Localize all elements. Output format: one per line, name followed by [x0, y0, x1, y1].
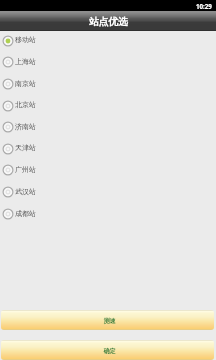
staticText: 南京站 — [15, 79, 36, 88]
staticText: 移动站 — [15, 35, 36, 44]
staticText: 天津站 — [15, 143, 36, 152]
button[interactable]: 上海站 — [0, 51, 216, 73]
staticText: 广州站 — [15, 165, 36, 174]
staticText: 武汉站 — [15, 187, 36, 196]
button[interactable]: 北京站 — [0, 95, 216, 116]
staticText: 10:29 — [196, 2, 212, 10]
button[interactable]: 确定 — [1, 340, 214, 360]
staticText: 测速 — [103, 317, 116, 325]
button[interactable]: 济南站 — [0, 116, 216, 138]
button[interactable]: 成都站 — [0, 203, 216, 225]
staticText: 成都站 — [15, 209, 36, 218]
button[interactable]: 天津站 — [0, 138, 216, 159]
staticText: 确定 — [103, 347, 116, 355]
button[interactable]: 广州站 — [0, 159, 216, 181]
button[interactable]: 移动站 — [0, 30, 216, 51]
staticText: 上海站 — [15, 57, 36, 66]
button[interactable]: 武汉站 — [0, 181, 216, 203]
button[interactable]: 南京站 — [0, 73, 216, 95]
staticText: 济南站 — [15, 122, 36, 131]
staticText: 北京站 — [15, 100, 36, 109]
button[interactable]: 测速 — [1, 310, 214, 330]
staticText: 站点优选 — [89, 16, 128, 28]
